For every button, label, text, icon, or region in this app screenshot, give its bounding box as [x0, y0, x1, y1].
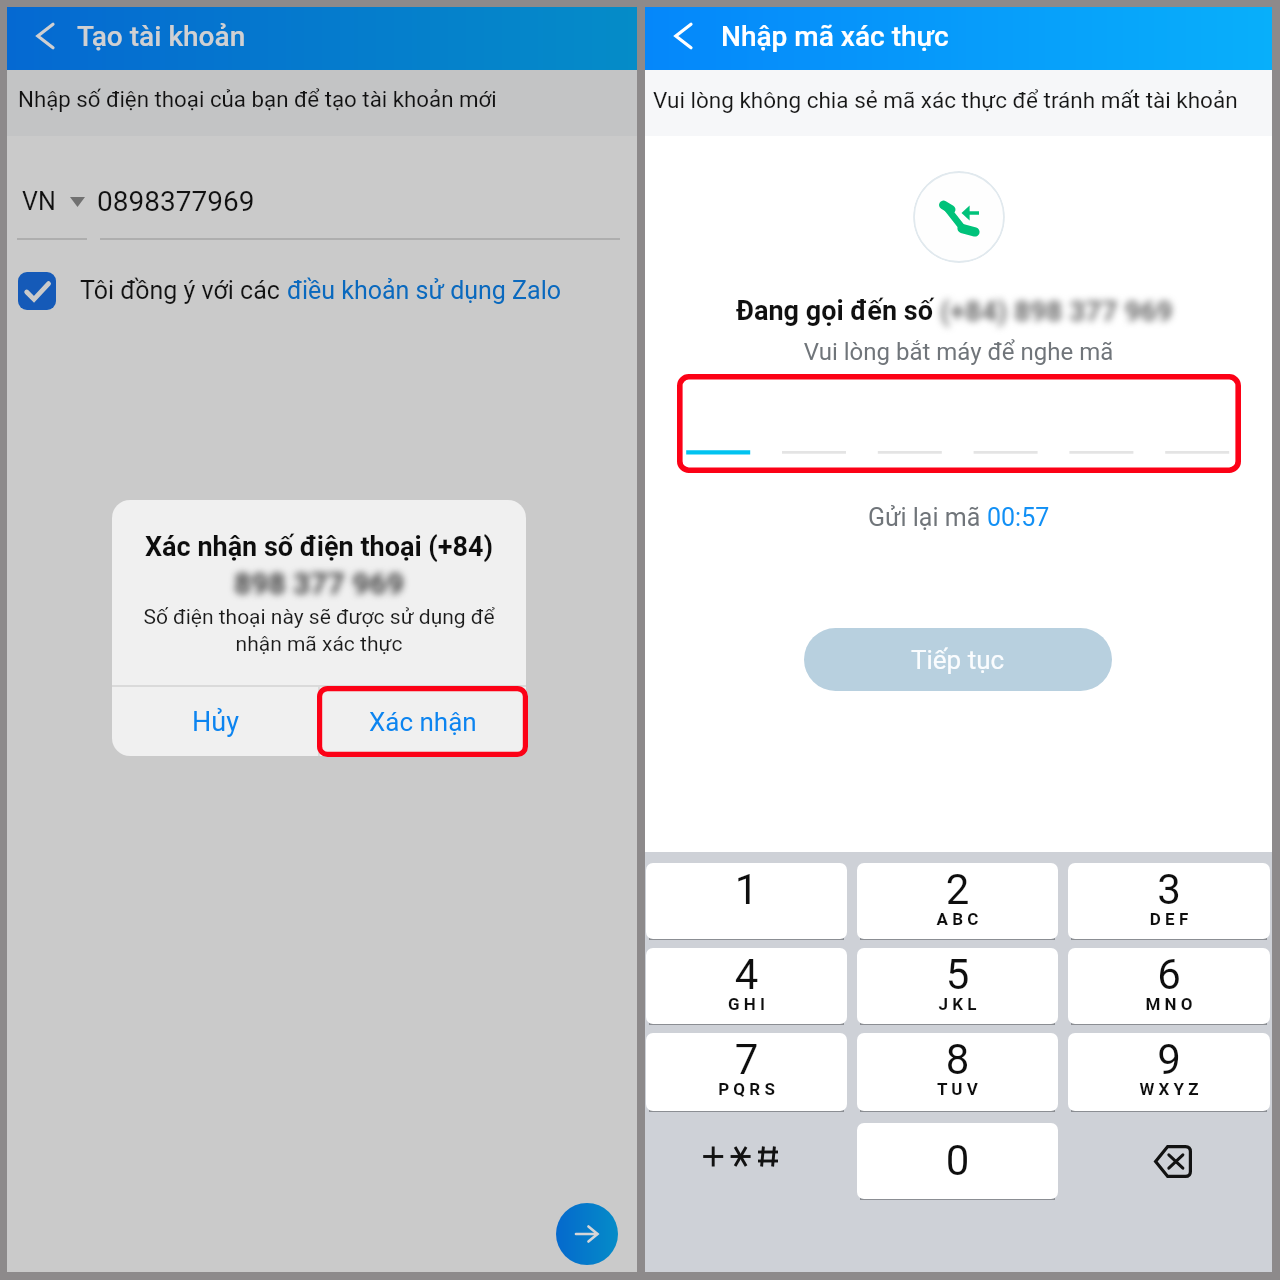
staticText: Tiếp tục [911, 645, 1005, 675]
button[interactable]: Xác nhận [320, 687, 526, 756]
button[interactable]: 7 [646, 1033, 847, 1111]
staticText: D E F [1068, 909, 1270, 929]
staticText: 9 [1068, 1035, 1270, 1084]
staticText: Gửi lại mã [868, 503, 987, 532]
button[interactable]: 1 [646, 863, 847, 939]
button[interactable]: 0 [857, 1123, 1058, 1199]
staticText: Xác nhận số điện thoại (+84) [112, 531, 526, 563]
button[interactable]: 2 [857, 863, 1058, 939]
staticText: P Q R S [646, 1079, 847, 1099]
staticText: 0 [857, 1136, 1058, 1185]
staticText: 2 [857, 865, 1058, 914]
button[interactable]: 00:57 [987, 503, 1050, 532]
staticText: 6 [1068, 950, 1270, 999]
staticText: VN [22, 187, 56, 216]
staticText: 8 [857, 1035, 1058, 1084]
button[interactable]: Back [7, 7, 75, 70]
button[interactable]: 9 [1068, 1033, 1270, 1111]
staticText: 1 [646, 865, 847, 914]
staticText: Nhập số điện thoại của bạn để tạo tài kh… [18, 86, 497, 112]
button[interactable]: Plus star pound [646, 1123, 847, 1199]
staticText: điều khoản sử dụng Zalo [287, 276, 561, 305]
staticText: Tạo tài khoản [77, 20, 246, 53]
button[interactable]: Back [645, 7, 713, 70]
button[interactable]: 4 [646, 948, 847, 1024]
staticText: M N O [1068, 994, 1270, 1014]
button[interactable]: 5 [857, 948, 1058, 1024]
staticText: Tôi đồng ý với các [80, 276, 287, 305]
staticText: T U V [857, 1079, 1058, 1099]
button[interactable]: Hủy [112, 687, 318, 756]
staticText: Số điện thoại này sẽ được sử dụng để nhậ… [112, 605, 526, 657]
staticText: 5 [857, 950, 1058, 999]
staticText: Nhập mã xác thực [721, 20, 949, 53]
staticText: J K L [857, 994, 1058, 1014]
staticText: W X Y Z [1068, 1079, 1270, 1099]
button[interactable]: 3 [1068, 863, 1270, 939]
staticText: G H I [646, 994, 847, 1014]
staticText: Vui lòng không chia sẻ mã xác thực để tr… [653, 87, 1238, 113]
staticText: Đang gọi đến số [736, 295, 940, 327]
staticText: 0898377969 [97, 185, 255, 218]
button[interactable]: Tôi đồng ý với các [18, 272, 578, 310]
staticText: Vui lòng bắt máy để nghe mã [645, 338, 1272, 366]
button[interactable]: Backspace [1068, 1123, 1270, 1199]
button[interactable]: 6 [1068, 948, 1270, 1024]
button[interactable]: 8 [857, 1033, 1058, 1111]
staticText: Hủy [192, 706, 239, 738]
staticText: 4 [646, 950, 847, 999]
staticText: (+84) 898 377 969 [940, 295, 1173, 328]
staticText: A B C [857, 909, 1058, 929]
button[interactable]: Tiếp tục [556, 1203, 618, 1265]
staticText: 3 [1068, 865, 1270, 914]
staticText: Xác nhận [369, 707, 477, 737]
button[interactable]: Tiếp tục [804, 628, 1112, 691]
staticText: 7 [646, 1035, 847, 1084]
staticText: 898 377 969 [234, 566, 404, 601]
